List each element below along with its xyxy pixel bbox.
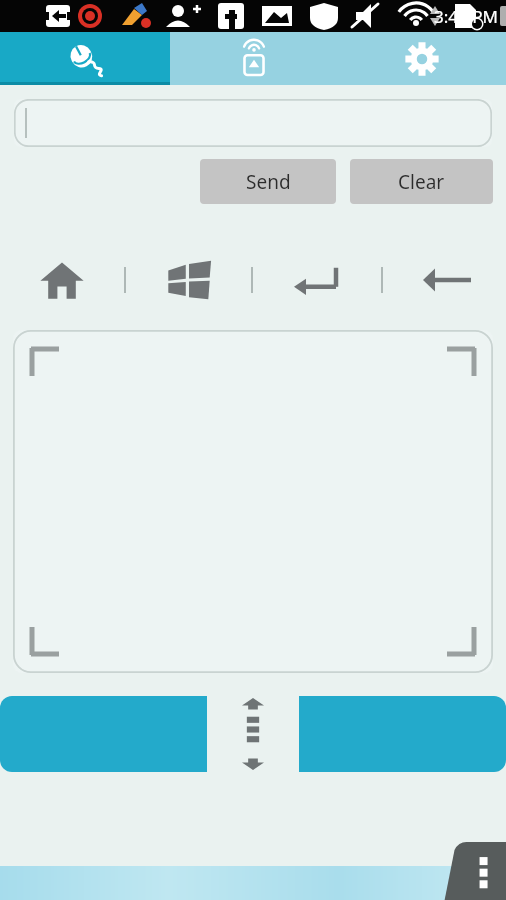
staticText: Clear: [398, 169, 445, 195]
staticText: Send: [246, 169, 291, 195]
button[interactable]: Touchpad: [13, 330, 493, 673]
button[interactable]: Right click: [299, 696, 506, 772]
button[interactable]: Scroll: [238, 696, 268, 772]
staticText: 3:46 PM: [434, 5, 498, 28]
button[interactable]: More options: [440, 842, 506, 900]
button[interactable]: Windows key: [160, 252, 218, 308]
button[interactable]: Connect: [170, 32, 338, 85]
button[interactable]: Settings: [338, 32, 506, 85]
button[interactable]: Clear: [350, 159, 493, 204]
button[interactable]: [14, 99, 492, 147]
button[interactable]: Send: [200, 159, 336, 204]
button[interactable]: Backspace: [416, 252, 478, 308]
button[interactable]: Home: [34, 252, 90, 308]
button[interactable]: Mouse: [0, 32, 170, 85]
button[interactable]: Left click: [0, 696, 207, 772]
button[interactable]: Enter: [286, 252, 348, 308]
